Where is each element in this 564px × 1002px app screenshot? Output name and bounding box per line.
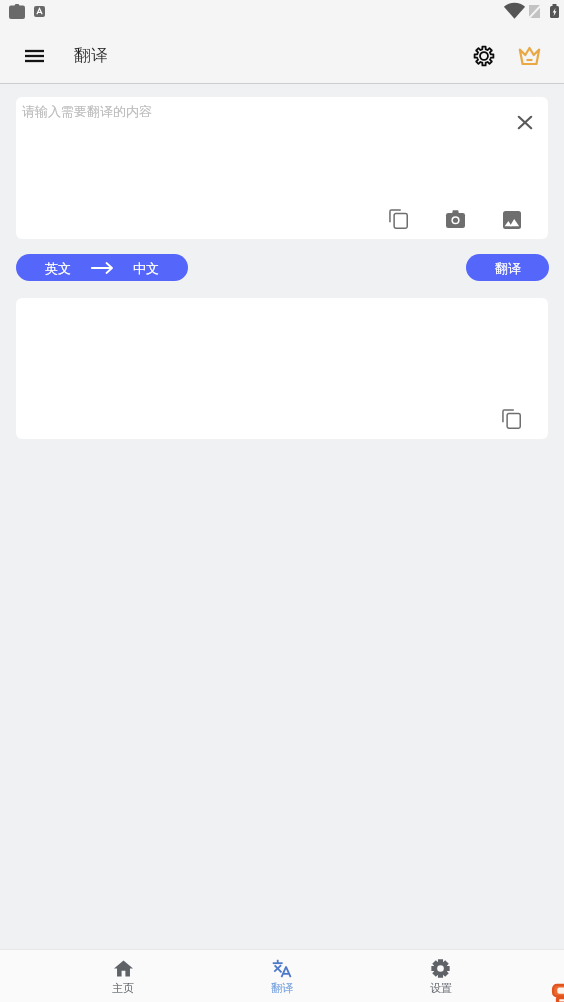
button[interactable]: Clear text [507,104,543,140]
button[interactable]: 翻译 [202,949,361,1002]
button[interactable]: Assistant [550,982,564,1002]
button[interactable]: Premium [507,34,551,78]
button[interactable]: Gallery [494,200,530,236]
staticText: 英文 [45,260,71,276]
staticText: 主页 [112,981,134,995]
staticText: 翻译 [271,981,293,995]
button[interactable]: Menu [12,34,56,78]
staticText: 翻译 [74,45,108,66]
staticText: 翻译 [495,260,521,276]
button[interactable]: Paste [380,200,416,236]
staticText: 中文 [133,260,159,276]
staticText: 请输入需要翻译的内容 [22,103,152,119]
button[interactable]: Copy result [493,400,529,436]
button[interactable]: Camera [437,200,473,236]
button[interactable]: 翻译 [466,254,549,281]
button[interactable]: 设置 [361,949,520,1002]
staticText: 设置 [430,981,452,995]
button[interactable]: 主页 [44,949,202,1002]
button[interactable]: Settings [462,34,506,78]
button[interactable]: 英文 [16,254,188,281]
